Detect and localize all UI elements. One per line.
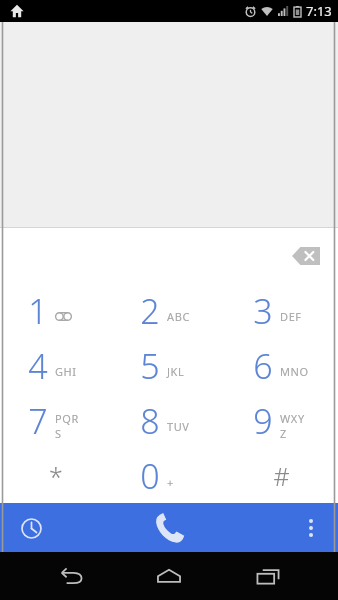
button[interactable]: 9 — [225, 393, 338, 448]
button[interactable]: Backspace — [284, 239, 328, 273]
button[interactable]: 6 — [225, 338, 338, 393]
button[interactable]: 2 — [112, 284, 225, 338]
staticText: GHI — [55, 364, 77, 379]
staticText: 2 — [140, 288, 160, 334]
button[interactable]: More options — [290, 507, 332, 549]
staticText: # — [273, 459, 290, 493]
staticText: ABC — [167, 309, 190, 324]
button[interactable]: 5 — [112, 338, 225, 393]
staticText: 5 — [140, 343, 160, 389]
staticText: 7 — [28, 398, 48, 444]
button[interactable]: # — [225, 448, 338, 503]
staticText: 3 — [253, 288, 273, 334]
button[interactable]: 4 — [0, 338, 112, 393]
button[interactable]: Recent apps — [240, 554, 296, 598]
button[interactable]: 3 — [225, 284, 338, 338]
staticText: JKL — [167, 364, 185, 379]
staticText: PQRS — [55, 411, 85, 441]
staticText: 6 — [253, 343, 273, 389]
button[interactable]: Back — [43, 554, 99, 598]
button[interactable]: * — [0, 448, 112, 503]
button[interactable]: 7 — [0, 393, 112, 448]
button[interactable]: 1 — [0, 284, 112, 338]
staticText: DEF — [280, 309, 302, 324]
staticText: + — [167, 475, 174, 490]
button[interactable]: 8 — [112, 393, 225, 448]
staticText: 4 — [28, 343, 48, 389]
button[interactable]: Home — [141, 554, 197, 598]
staticText: TUV — [167, 419, 190, 434]
staticText: 0 — [140, 453, 160, 499]
staticText: 7:13 — [306, 2, 332, 20]
staticText: 8 — [140, 398, 160, 444]
button[interactable]: Recent calls — [8, 505, 54, 551]
staticText: 9 — [253, 398, 273, 444]
staticText: * — [49, 459, 63, 493]
staticText: MNO — [280, 364, 309, 379]
staticText: WXYZ — [280, 411, 310, 441]
button[interactable]: Call — [137, 505, 201, 551]
button[interactable]: 0 — [112, 448, 225, 503]
staticText: 1 — [28, 288, 48, 334]
